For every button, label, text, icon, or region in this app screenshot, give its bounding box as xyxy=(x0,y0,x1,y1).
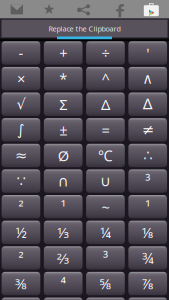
button[interactable]: Σ xyxy=(44,92,83,116)
staticText: + xyxy=(59,43,67,63)
button[interactable]: ≈ xyxy=(2,144,40,167)
button[interactable]: Rate xyxy=(44,4,54,15)
staticText: * xyxy=(59,69,67,88)
staticText: ⅛ xyxy=(142,223,154,242)
button[interactable]: ' xyxy=(128,41,167,65)
button[interactable]: + xyxy=(44,41,83,65)
staticText: ∵ xyxy=(16,173,25,189)
button[interactable]: ⅝ xyxy=(86,272,125,295)
button[interactable]: ¾ xyxy=(128,246,167,270)
button[interactable]: √ xyxy=(2,92,40,116)
button[interactable]: ÷ xyxy=(86,41,125,65)
button[interactable]: ⅙ xyxy=(2,297,40,300)
button[interactable]: Share xyxy=(77,4,90,15)
staticText: ½ xyxy=(15,223,26,242)
button[interactable]: ³ xyxy=(86,246,125,270)
staticText: ≈ xyxy=(15,147,27,164)
button[interactable]: Δ xyxy=(86,92,125,116)
button[interactable]: ⅚ xyxy=(44,297,83,300)
button[interactable]: ∪ xyxy=(86,169,125,193)
staticText: Ø xyxy=(58,146,69,165)
staticText: Δ xyxy=(101,94,110,114)
button[interactable]: * xyxy=(44,67,83,90)
button[interactable]: ⅕ xyxy=(86,297,125,300)
staticText: ¾ xyxy=(142,248,153,268)
staticText: Replace the Clipboard xyxy=(48,24,120,33)
button[interactable]: ⅔ xyxy=(44,246,83,270)
button[interactable]: ⅜ xyxy=(2,272,40,295)
staticText: ℃ xyxy=(98,146,113,165)
staticText: ∪ xyxy=(100,173,111,189)
button[interactable]: × xyxy=(2,67,40,90)
button[interactable]: ℃ xyxy=(86,144,125,167)
staticText: ¹ xyxy=(61,197,66,216)
staticText: ∆ xyxy=(143,96,153,112)
staticText: ⅞ xyxy=(142,274,154,293)
button[interactable]: ¹ xyxy=(44,195,83,218)
button[interactable]: Email xyxy=(11,5,23,14)
staticText: ⅝ xyxy=(99,274,111,293)
button[interactable]: Facebook xyxy=(115,3,124,17)
button[interactable]: ± xyxy=(44,118,83,142)
staticText: = xyxy=(101,120,109,140)
button[interactable]: ⅛ xyxy=(128,221,167,244)
staticText: ¼ xyxy=(100,223,111,242)
staticText: √ xyxy=(16,96,25,112)
staticText: ³ xyxy=(145,171,150,191)
staticText: ± xyxy=(59,120,67,140)
button[interactable]: ∩ xyxy=(44,169,83,193)
button[interactable]: ≠ xyxy=(128,118,167,142)
button[interactable]: ² xyxy=(2,246,40,270)
button[interactable]: ¹ xyxy=(128,195,167,218)
staticText: ³ xyxy=(103,248,108,268)
button[interactable]: ⅓ xyxy=(44,221,83,244)
staticText: ⅜ xyxy=(15,274,27,293)
staticText: ∴ xyxy=(143,147,152,164)
staticText: - xyxy=(18,43,23,63)
staticText: ~ xyxy=(101,197,109,216)
staticText: ^ xyxy=(101,69,109,88)
staticText: ² xyxy=(18,197,23,216)
staticText: ¹ xyxy=(145,197,150,216)
button[interactable]: ⅞ xyxy=(128,272,167,295)
button[interactable]: Replace the Clipboard xyxy=(1,20,167,37)
button[interactable]: ^ xyxy=(86,67,125,90)
staticText: ÷ xyxy=(101,43,109,63)
staticText: ² xyxy=(18,248,23,268)
button[interactable]: ½ xyxy=(2,221,40,244)
button[interactable]: ² xyxy=(2,195,40,218)
staticText: ' xyxy=(146,43,149,63)
staticText: ⅔ xyxy=(57,248,70,268)
staticText: ∫ xyxy=(17,121,25,138)
staticText: ∩ xyxy=(58,173,69,189)
staticText: ⅓ xyxy=(57,223,69,242)
button[interactable]: ∵ xyxy=(2,169,40,193)
button[interactable]: ³ xyxy=(128,169,167,193)
staticText: × xyxy=(17,69,25,88)
button[interactable]: ¼ xyxy=(86,221,125,244)
button[interactable]: ∫ xyxy=(2,118,40,142)
button[interactable]: ∧ xyxy=(128,67,167,90)
staticText: ⁴ xyxy=(61,274,66,293)
button[interactable]: ⁴ xyxy=(44,272,83,295)
button[interactable]: ~ xyxy=(86,195,125,218)
button[interactable]: - xyxy=(2,41,40,65)
staticText: ≠ xyxy=(142,121,154,138)
button[interactable]: ∆ xyxy=(128,92,167,116)
staticText: ∧ xyxy=(142,70,153,87)
staticText: Σ xyxy=(59,94,67,114)
button[interactable]: ⅗ xyxy=(128,297,167,300)
button[interactable]: Ø xyxy=(44,144,83,167)
button[interactable]: ∴ xyxy=(128,144,167,167)
button[interactable]: Play Store xyxy=(144,3,159,16)
button[interactable]: = xyxy=(86,118,125,142)
